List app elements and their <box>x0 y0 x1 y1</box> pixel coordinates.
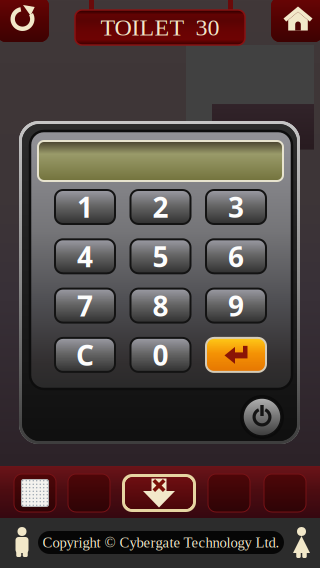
staticText: 6 <box>228 238 244 275</box>
button[interactable]: Home <box>271 0 320 42</box>
staticText: 1 <box>77 188 93 226</box>
button[interactable]: Restart <box>0 0 49 42</box>
button[interactable]: Put away <box>122 474 196 512</box>
button[interactable]: C <box>55 338 115 372</box>
staticText: 8 <box>152 287 168 324</box>
button[interactable]: Power <box>239 394 285 440</box>
button[interactable]: Enter <box>206 338 266 372</box>
button[interactable]: Empty slot 5 <box>264 474 306 512</box>
staticText: C <box>76 336 94 373</box>
staticText: 3 <box>228 188 244 226</box>
staticText: 9 <box>228 287 244 324</box>
button[interactable]: 8 <box>130 289 190 323</box>
button[interactable]: 5 <box>130 239 190 273</box>
button[interactable]: Cloth item <box>14 474 56 512</box>
button[interactable]: 6 <box>206 239 266 273</box>
staticText: 0 <box>152 336 168 373</box>
button[interactable]: 4 <box>55 239 115 273</box>
button[interactable]: 1 <box>55 190 115 224</box>
staticText: Copyright © Cybergate Technology Ltd. <box>42 534 279 551</box>
staticText: 5 <box>152 238 168 275</box>
button[interactable]: 2 <box>130 190 190 224</box>
button[interactable]: 3 <box>206 190 266 224</box>
staticText: TOILET 30 <box>100 14 219 41</box>
staticText: 7 <box>77 287 93 324</box>
staticText: 2 <box>152 188 168 226</box>
button[interactable]: Empty slot 2 <box>68 474 110 512</box>
button[interactable]: 0 <box>130 338 190 372</box>
button[interactable]: 9 <box>206 289 266 323</box>
staticText: 4 <box>77 238 93 275</box>
button[interactable]: 7 <box>55 289 115 323</box>
button[interactable]: Empty slot 4 <box>208 474 250 512</box>
